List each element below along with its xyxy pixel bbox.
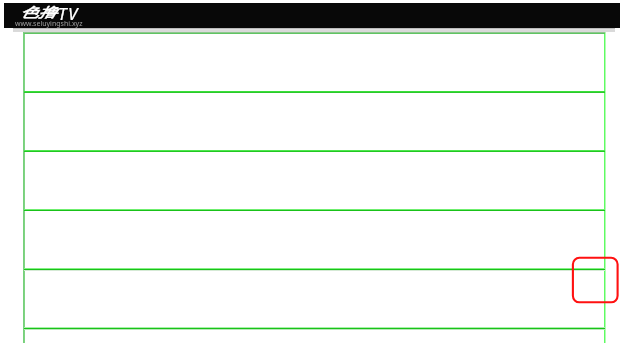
staticText: 色撸 — [20, 5, 57, 22]
staticText: www.seluyingshi.xyz — [15, 19, 83, 29]
staticText: TV — [58, 2, 79, 25]
